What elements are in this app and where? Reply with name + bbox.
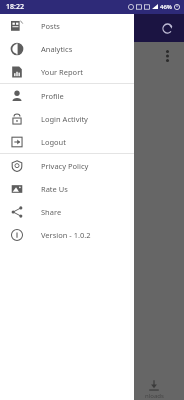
button[interactable]: Privacy Policy [0, 154, 134, 177]
staticText: Rate Us [41, 184, 68, 194]
staticText: Share [41, 207, 62, 217]
staticText: Analytics [41, 44, 73, 54]
button[interactable]: Share [0, 200, 134, 223]
staticText: Your Report [41, 67, 83, 77]
staticText: Privacy Policy [41, 161, 89, 171]
staticText: 18:22 [6, 2, 24, 12]
button[interactable]: Logout [0, 130, 134, 153]
staticText: Profile [41, 91, 64, 101]
button[interactable]: Your Report [0, 60, 134, 83]
button[interactable]: Posts [0, 14, 134, 37]
staticText: Login Activity [41, 114, 88, 124]
button[interactable]: Version - 1.0.2 [0, 223, 134, 246]
button[interactable]: Profile [0, 84, 134, 107]
staticText: nloads [145, 392, 164, 400]
staticText: Posts [41, 21, 60, 31]
button[interactable]: Rate Us [0, 177, 134, 200]
staticText: Version - 1.0.2 [41, 230, 91, 240]
staticText: Logout [41, 137, 66, 147]
button[interactable]: Refresh [156, 17, 178, 39]
button[interactable]: Login Activity [0, 107, 134, 130]
staticText: 46% [160, 3, 172, 11]
button[interactable]: More options [155, 44, 179, 68]
button[interactable]: nloads [134, 379, 174, 400]
button[interactable]: Analytics [0, 37, 134, 60]
